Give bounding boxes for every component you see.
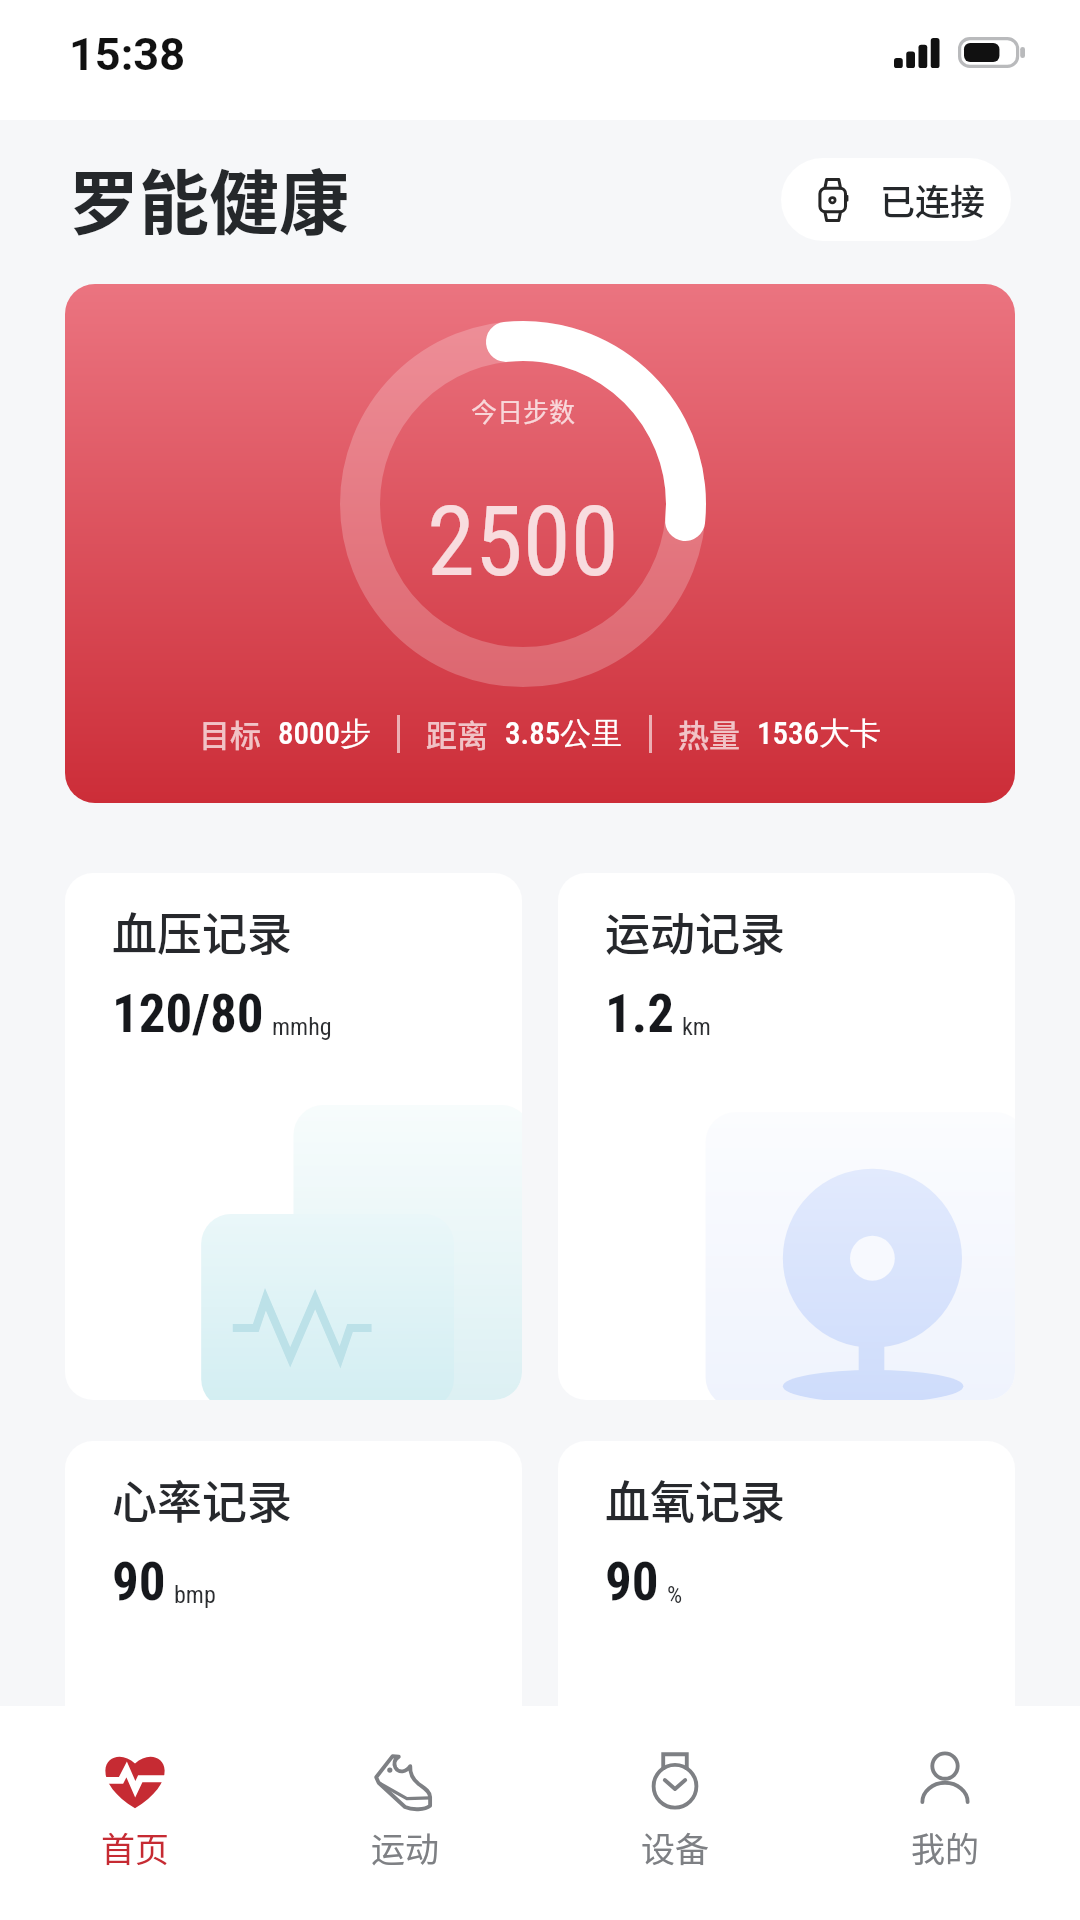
button[interactable]: 血压记录 xyxy=(65,873,522,1400)
staticText: km xyxy=(682,1013,711,1041)
button[interactable]: 今日步数 xyxy=(65,284,1015,803)
button[interactable]: 运动记录 xyxy=(558,873,1015,1400)
button[interactable]: 首页 xyxy=(0,1706,270,1920)
staticText: 目标 xyxy=(199,711,261,756)
staticText: 已连接 xyxy=(880,174,986,225)
staticText: 血压记录 xyxy=(112,899,293,964)
button[interactable]: 设备 xyxy=(540,1706,810,1920)
staticText: bmp xyxy=(174,1581,216,1609)
staticText: 90 xyxy=(605,1551,659,1613)
staticText: 今日步数 xyxy=(471,392,576,430)
staticText: 我的 xyxy=(911,1823,979,1872)
staticText: 罗能健康 xyxy=(69,148,349,249)
staticText: 热量 xyxy=(678,711,740,756)
staticText: 3.85公里 xyxy=(505,714,623,753)
staticText: 运动记录 xyxy=(605,899,786,964)
button[interactable]: 心率记录 xyxy=(65,1441,522,1920)
button[interactable]: 我的 xyxy=(810,1706,1080,1920)
staticText: 1536大卡 xyxy=(757,714,881,753)
staticText: 距离 xyxy=(426,711,488,756)
button[interactable]: 血氧记录 xyxy=(558,1441,1015,1920)
staticText: 120/80 xyxy=(112,983,264,1045)
staticText: mmhg xyxy=(272,1013,332,1041)
staticText: 运动 xyxy=(371,1823,439,1872)
staticText: 血氧记录 xyxy=(605,1467,786,1532)
staticText: 心率记录 xyxy=(112,1467,293,1532)
staticText: 8000步 xyxy=(278,714,371,753)
staticText: 首页 xyxy=(101,1823,169,1872)
staticText: 2500 xyxy=(427,485,619,599)
staticText: 设备 xyxy=(641,1823,709,1872)
button[interactable]: Watch connected xyxy=(781,158,1011,241)
staticText: 90 xyxy=(112,1551,166,1613)
other: Watch connected xyxy=(818,177,850,223)
staticText: 1.2 xyxy=(605,983,674,1045)
staticText: 15:38 xyxy=(69,28,185,81)
staticText: % xyxy=(667,1581,683,1609)
button[interactable]: 运动 xyxy=(270,1706,540,1920)
